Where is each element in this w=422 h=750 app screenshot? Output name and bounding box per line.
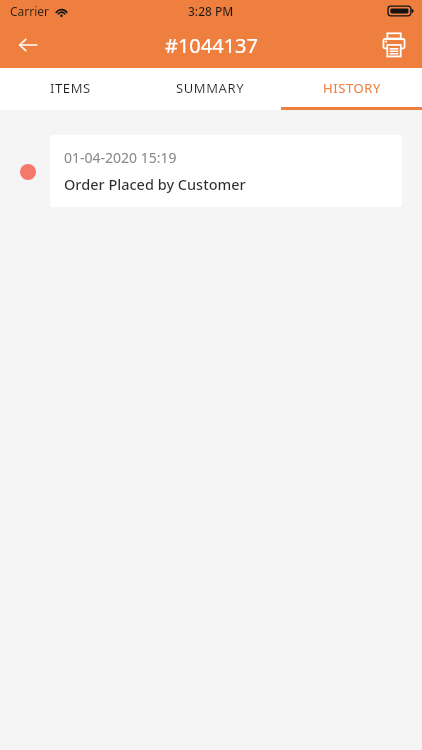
staticText: 01-04-2020 15:19 <box>64 148 177 167</box>
staticText: 3:28 PM <box>188 3 234 19</box>
button[interactable]: SUMMARY <box>140 68 281 107</box>
button[interactable]: 01-04-2020 15:19 <box>50 135 402 207</box>
staticText: Order Placed by Customer <box>64 174 246 194</box>
staticText: HISTORY <box>323 79 381 97</box>
staticText: Carrier <box>10 3 50 19</box>
button[interactable]: HISTORY <box>281 68 422 107</box>
button[interactable]: ITEMS <box>0 68 140 107</box>
staticText: SUMMARY <box>176 79 245 97</box>
button[interactable]: Print <box>374 25 414 65</box>
button[interactable]: Back <box>8 25 48 65</box>
staticText: ITEMS <box>50 79 91 97</box>
staticText: #1044137 <box>165 32 258 59</box>
